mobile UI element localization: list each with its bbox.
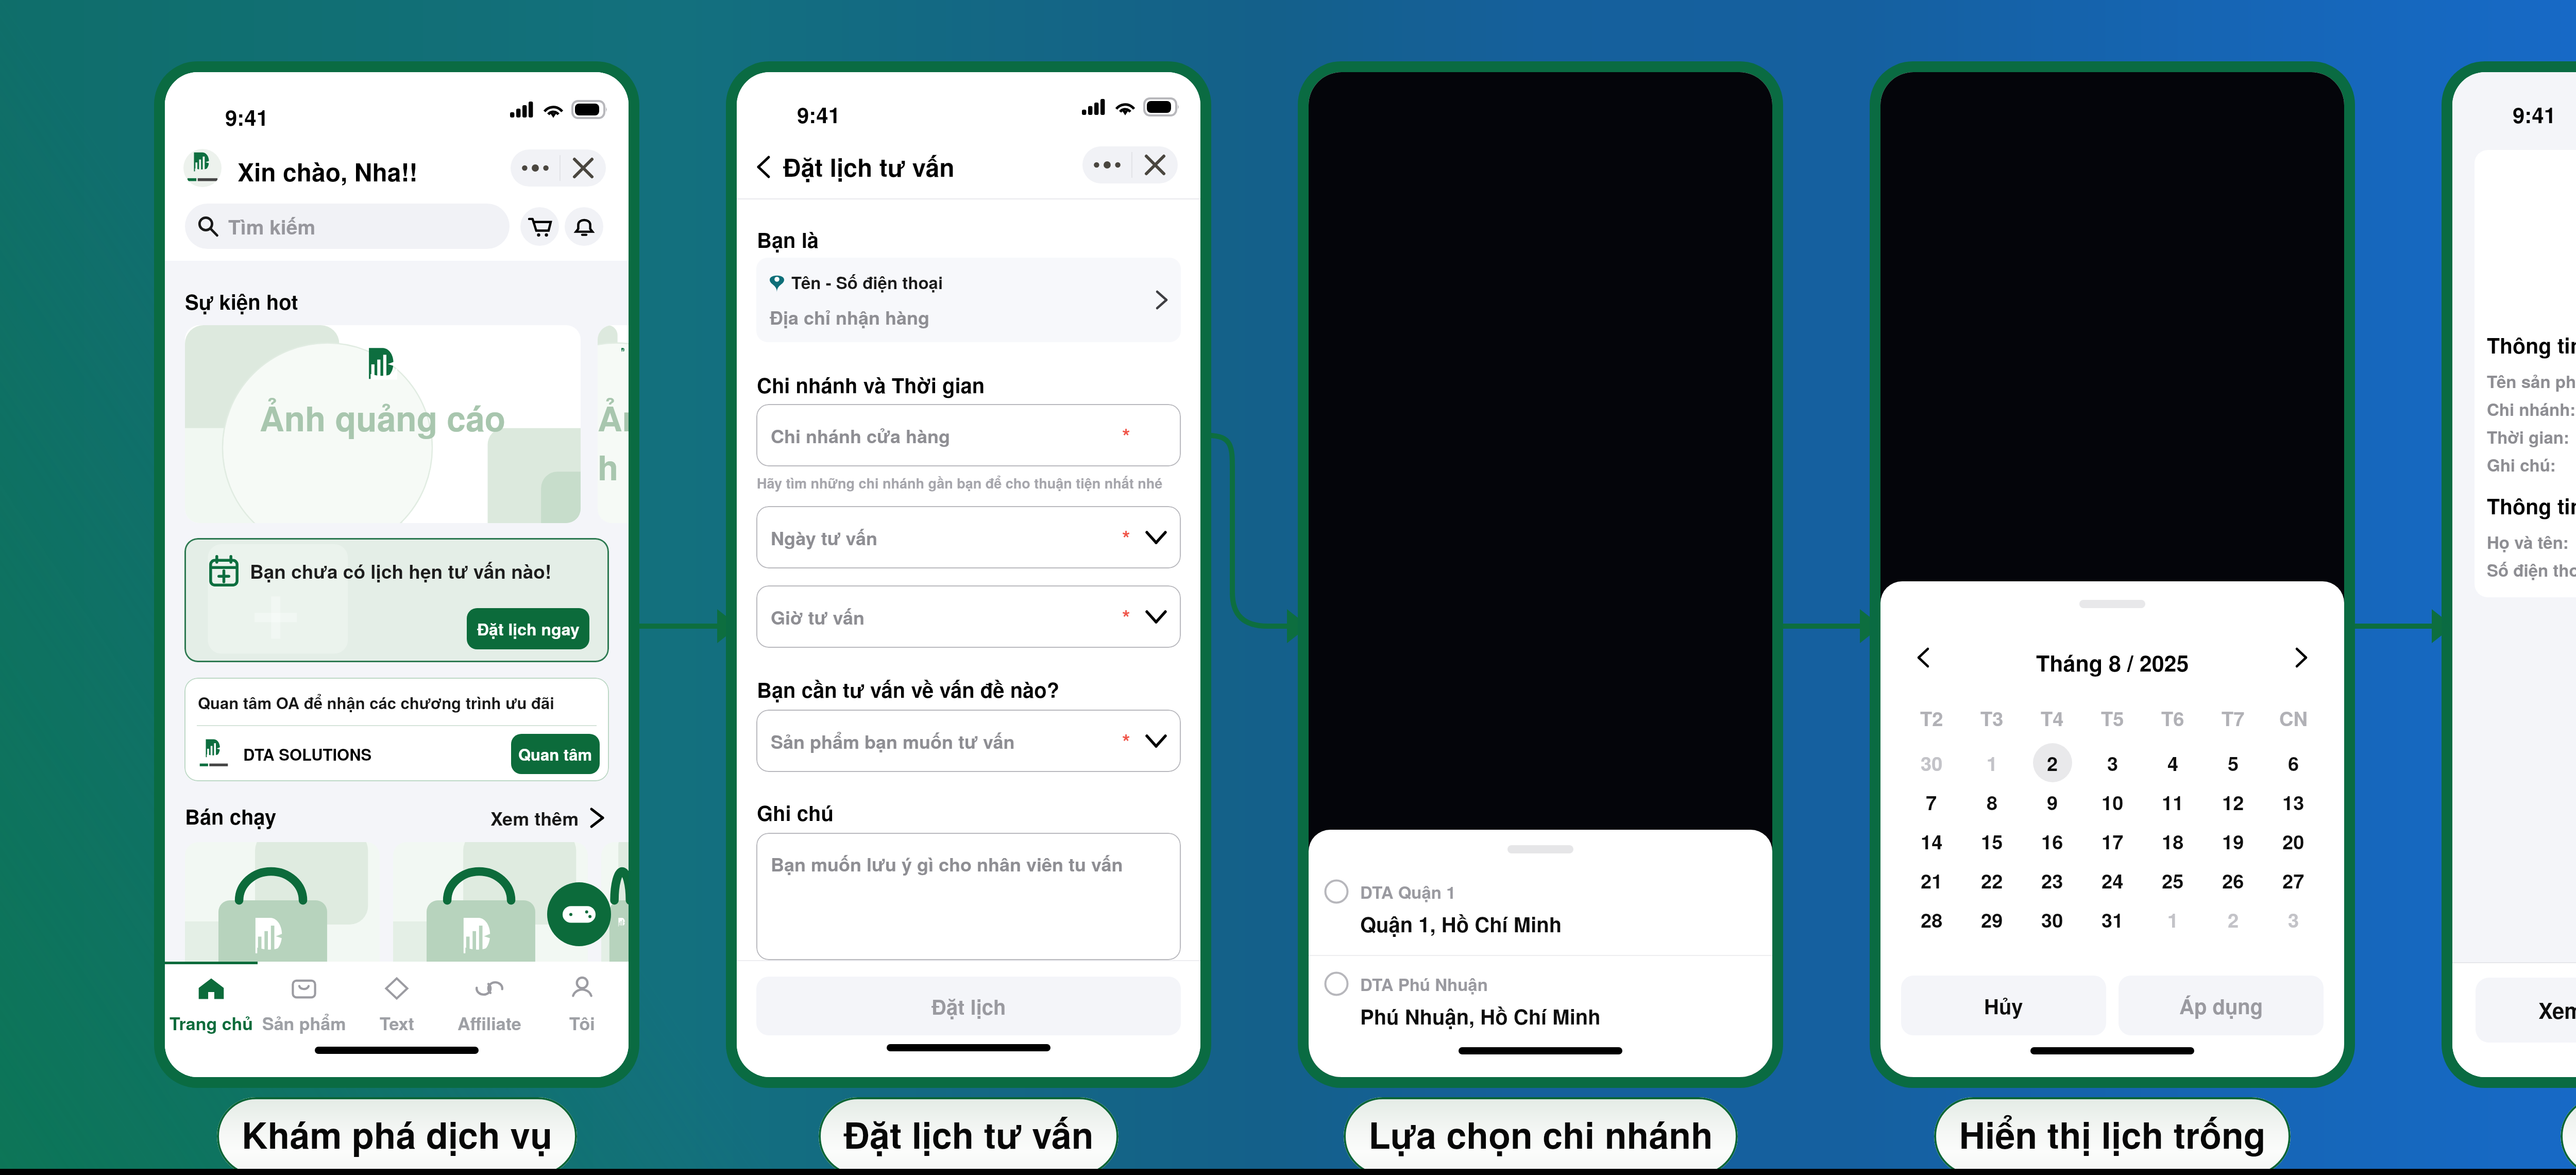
button[interactable]: Đặt lịch xyxy=(756,977,1181,1035)
button[interactable]: More options xyxy=(1082,146,1131,183)
staticText: Chi nhánh cửa hàng xyxy=(771,422,950,449)
staticText: Quận 1, Hồ Chí Minh xyxy=(1360,909,1562,938)
button[interactable]: DTA Quận 1 xyxy=(1309,863,1772,955)
staticText: 1 xyxy=(1987,749,1998,777)
button[interactable]: 24 xyxy=(2082,861,2143,900)
button[interactable]: 9 xyxy=(2022,782,2082,821)
button[interactable]: 16 xyxy=(2022,821,2082,861)
staticText: 6 xyxy=(2288,749,2299,777)
button[interactable]: 27 xyxy=(2263,861,2324,900)
button[interactable]: Áp dụng xyxy=(2119,976,2324,1035)
button[interactable]: 30 xyxy=(2022,900,2082,939)
button[interactable]: 19 xyxy=(2203,821,2263,861)
staticText: CN xyxy=(2279,704,2308,732)
button[interactable]: 20 xyxy=(2263,821,2324,861)
staticText: DTA Phú Nhuận xyxy=(1360,972,1488,996)
button[interactable]: Quan tâm xyxy=(511,734,600,774)
button[interactable] xyxy=(393,842,588,997)
button[interactable]: Close xyxy=(1132,146,1178,183)
staticText: Thời gian: xyxy=(2487,425,2569,449)
staticText: 11 xyxy=(2162,788,2184,816)
button[interactable]: 25 xyxy=(2143,861,2203,900)
button[interactable]: 3 xyxy=(2263,900,2324,939)
staticText: Affiliate xyxy=(457,1011,521,1036)
staticText: Xem lại xyxy=(2538,995,2576,1026)
button[interactable]: 3 xyxy=(2082,743,2143,782)
button[interactable]: 11 xyxy=(2143,782,2203,821)
button[interactable]: 31 xyxy=(2082,900,2143,939)
button[interactable]: 2 xyxy=(2022,743,2082,782)
button[interactable]: 1 xyxy=(2143,900,2203,939)
staticText: 3 xyxy=(2288,905,2299,933)
button[interactable]: 4 xyxy=(2143,743,2203,782)
button[interactable]: Trang chủ xyxy=(165,964,258,1046)
button[interactable]: 8 xyxy=(1962,782,2022,821)
button[interactable]: Cart xyxy=(520,207,559,246)
button[interactable]: 17 xyxy=(2082,821,2143,861)
button[interactable]: Tìm kiếm xyxy=(185,204,510,249)
button[interactable]: Tên - Số điện thoại xyxy=(756,258,1181,342)
button[interactable]: 18 xyxy=(2143,821,2203,861)
staticText: Hiển thị lịch trống xyxy=(1959,1108,2266,1160)
button[interactable]: Sản phẩm xyxy=(258,964,350,1046)
staticText: 31 xyxy=(2102,905,2124,933)
button[interactable]: Back xyxy=(750,154,777,180)
button[interactable]: Sản phẩm bạn muốn tư vấn xyxy=(756,710,1181,772)
staticText: 8 xyxy=(1987,788,1998,816)
button[interactable]: Đặt lịch ngay xyxy=(467,608,589,649)
button[interactable]: 6 xyxy=(2263,743,2324,782)
staticText: Khám phá dịch vụ xyxy=(242,1108,552,1160)
button[interactable]: 5 xyxy=(2203,743,2263,782)
button[interactable]: 7 xyxy=(1901,782,1962,821)
staticText: 17 xyxy=(2102,827,2124,855)
button[interactable]: Close xyxy=(561,149,606,187)
button[interactable]: 10 xyxy=(2082,782,2143,821)
button[interactable]: Tôi xyxy=(536,964,629,1046)
button[interactable]: Next month xyxy=(2287,644,2315,672)
button[interactable]: Xem thêm xyxy=(490,804,604,831)
staticText: 5 xyxy=(2228,749,2239,777)
staticText: Giờ tư vấn xyxy=(771,603,865,630)
button[interactable]: Xem lại xyxy=(2476,978,2576,1043)
button[interactable]: Text xyxy=(350,964,443,1046)
button[interactable]: 30 xyxy=(1901,743,1962,782)
button[interactable]: Hủy xyxy=(1901,976,2106,1035)
button[interactable]: 28 xyxy=(1901,900,1962,939)
button[interactable]: 14 xyxy=(1901,821,1962,861)
button[interactable]: Giờ tư vấn xyxy=(756,585,1181,648)
button[interactable]: 23 xyxy=(2022,861,2082,900)
staticText: 3 xyxy=(2107,749,2119,777)
button[interactable]: More options xyxy=(511,149,560,187)
button[interactable]: Games xyxy=(547,882,611,946)
staticText: 14 xyxy=(1921,827,1943,855)
button[interactable]: Notifications xyxy=(565,207,603,246)
button[interactable]: Affiliate xyxy=(443,964,536,1046)
button[interactable] xyxy=(185,842,380,997)
button[interactable]: DTA Phú Nhuận xyxy=(1309,956,1772,1046)
button[interactable]: 15 xyxy=(1962,821,2022,861)
button[interactable]: 29 xyxy=(1962,900,2022,939)
staticText: Đặt lịch tư vấn xyxy=(843,1108,1094,1160)
button[interactable]: 21 xyxy=(1901,861,1962,900)
button[interactable]: Ảnh quảng cáo xyxy=(185,325,581,523)
button[interactable]: 22 xyxy=(1962,861,2022,900)
staticText: Đặt lịch ngay xyxy=(477,617,580,641)
staticText: Chi nhánh: xyxy=(2487,397,2576,421)
button[interactable]: 13 xyxy=(2263,782,2324,821)
staticText: Ghi chú: xyxy=(2487,452,2556,477)
button[interactable]: Previous month xyxy=(1909,644,1937,672)
button[interactable] xyxy=(601,842,629,997)
staticText: Bạn muốn lưu ý gì cho nhân viên tu vấn xyxy=(771,850,1123,877)
button[interactable]: 26 xyxy=(2203,861,2263,900)
staticText: 13 xyxy=(2282,788,2304,816)
button[interactable]: Ngày tư vấn xyxy=(756,506,1181,568)
staticText: 16 xyxy=(2041,827,2063,855)
button[interactable]: 2 xyxy=(2203,900,2263,939)
staticText: 9:41 xyxy=(2513,99,2556,130)
button[interactable]: 12 xyxy=(2203,782,2263,821)
staticText: 4 xyxy=(2167,749,2179,777)
button[interactable]: Chi nhánh cửa hàng xyxy=(756,404,1181,466)
button[interactable]: 1 xyxy=(1962,743,2022,782)
staticText: Ngày tư vấn xyxy=(771,524,878,551)
button[interactable]: Bạn muốn lưu ý gì cho nhân viên tu vấn xyxy=(756,833,1181,960)
